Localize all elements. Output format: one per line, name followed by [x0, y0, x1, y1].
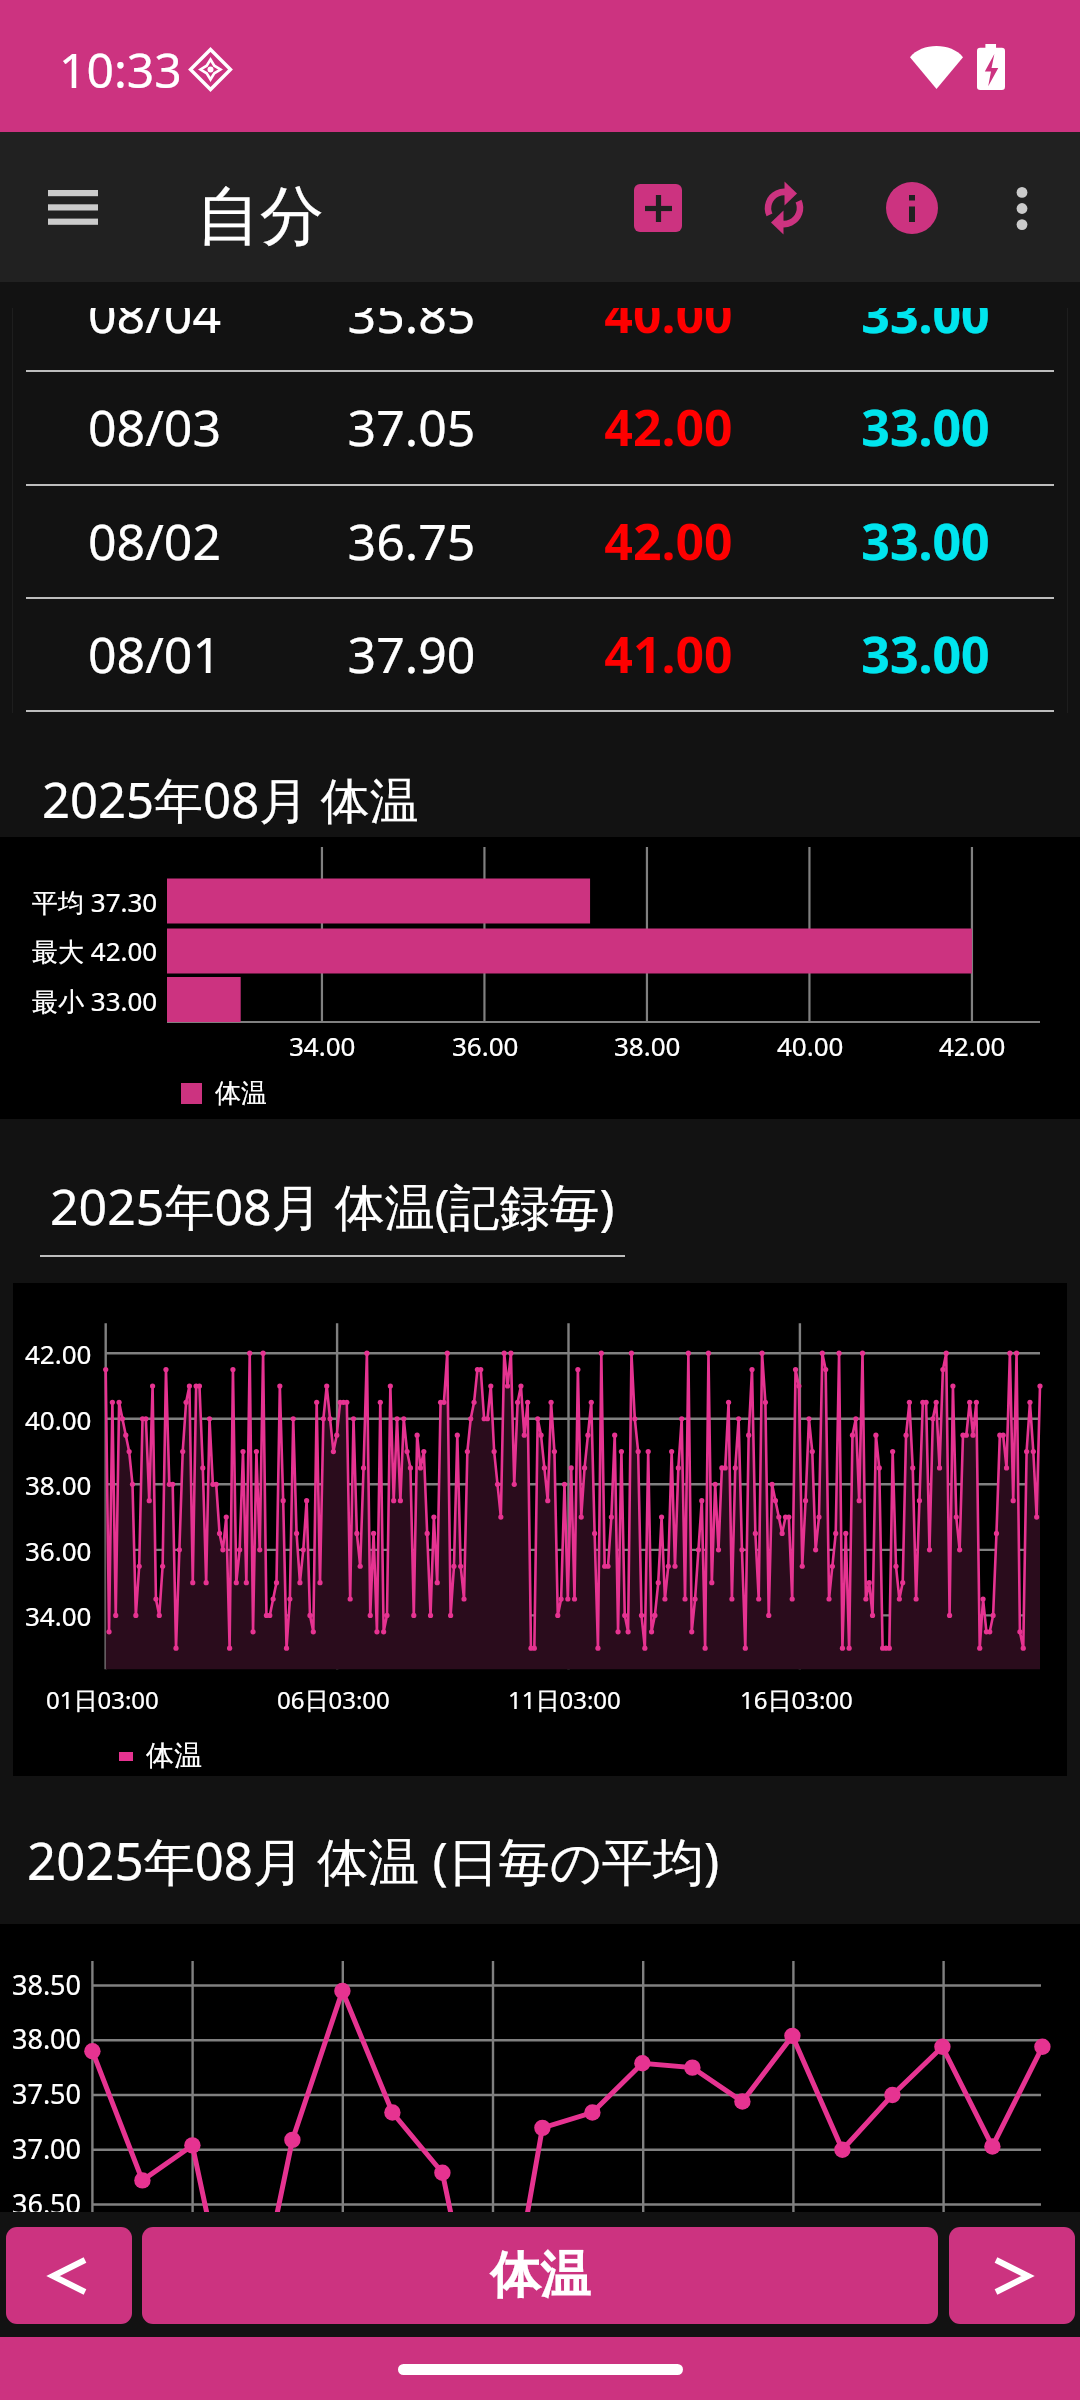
- staticText: 33.00: [797, 507, 1054, 575]
- staticText: 2025年08月 体温(記録毎): [50, 1172, 615, 1240]
- button[interactable]: Menu: [24, 160, 122, 254]
- staticText: 41.00: [540, 620, 797, 688]
- button[interactable]: Add: [610, 160, 706, 256]
- staticText: 42.00: [540, 507, 797, 575]
- staticText: 01日03:00: [46, 1683, 159, 1716]
- staticText: 37.05: [283, 393, 540, 461]
- staticText: 08/02: [26, 507, 283, 575]
- button[interactable]: Sync: [736, 160, 832, 256]
- button[interactable]: 体温: [142, 2227, 938, 2324]
- staticText: 40.00: [540, 308, 797, 348]
- staticText: 35.85: [283, 308, 540, 348]
- staticText: 体温: [490, 2244, 590, 2307]
- staticText: 36.00: [25, 1533, 92, 1568]
- staticText: 42.00: [540, 393, 797, 461]
- staticText: 38.00: [12, 2020, 82, 2057]
- staticText: 36.50: [12, 2185, 82, 2222]
- button[interactable]: 08/03: [0, 370, 1080, 483]
- staticText: 42.00: [939, 1028, 1006, 1063]
- staticText: 2025年08月 体温 (日毎の平均): [27, 1825, 720, 1895]
- staticText: 38.50: [12, 1966, 82, 2003]
- staticText: 08/01: [26, 620, 283, 688]
- staticText: 体温: [146, 1738, 202, 1773]
- staticText: 42.00: [25, 1336, 92, 1371]
- staticText: 16日03:00: [740, 1683, 853, 1716]
- button[interactable]: 08/01: [0, 597, 1080, 710]
- staticText: 体温: [215, 1077, 267, 1110]
- staticText: 37.50: [12, 2075, 82, 2112]
- staticText: 37.90: [283, 620, 540, 688]
- staticText: 37.00: [12, 2130, 82, 2167]
- staticText: 38.00: [614, 1028, 681, 1063]
- staticText: 36.00: [452, 1028, 519, 1063]
- staticText: 08/03: [26, 393, 283, 461]
- staticText: 2025年08月 体温: [42, 766, 419, 833]
- staticText: 08/04: [26, 308, 283, 348]
- staticText: 38.00: [25, 1467, 92, 1502]
- button[interactable]: 08/04: [0, 308, 1080, 370]
- staticText: 34.00: [25, 1598, 92, 1633]
- staticText: 34.00: [289, 1028, 356, 1063]
- button[interactable]: Next: [949, 2227, 1075, 2324]
- staticText: 平均 37.30: [32, 884, 158, 920]
- staticText: 33.00: [797, 393, 1054, 461]
- staticText: 自分: [196, 176, 324, 257]
- button[interactable]: More options: [974, 160, 1070, 256]
- button[interactable]: Previous: [6, 2227, 132, 2324]
- staticText: 06日03:00: [277, 1683, 390, 1716]
- staticText: 最大 42.00: [32, 933, 158, 969]
- staticText: 33.00: [797, 620, 1054, 688]
- button[interactable]: 08/02: [0, 484, 1080, 597]
- staticText: 40.00: [777, 1028, 844, 1063]
- staticText: 10:33: [59, 37, 182, 102]
- staticText: 40.00: [25, 1402, 92, 1437]
- staticText: 最小 33.00: [32, 983, 158, 1019]
- button[interactable]: Info: [864, 160, 960, 256]
- staticText: 11日03:00: [508, 1683, 621, 1716]
- staticText: 33.00: [797, 308, 1054, 348]
- staticText: 36.75: [283, 507, 540, 575]
